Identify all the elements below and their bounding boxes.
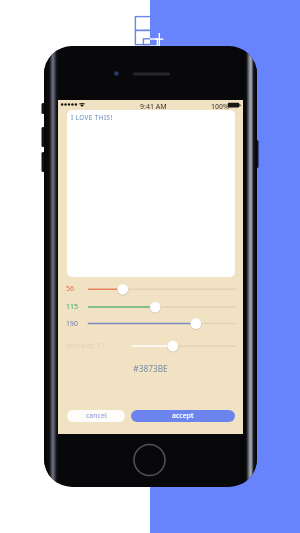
staticText: I LOVE THIS! — [71, 113, 113, 122]
staticText: 9:41 AM — [140, 102, 167, 112]
staticText: 56 — [66, 284, 75, 294]
staticText: 115 — [66, 302, 79, 312]
staticText: #3873BE — [58, 363, 243, 374]
button[interactable]: cancel — [67, 410, 125, 422]
staticText: cancel — [86, 411, 107, 421]
staticText: 190 — [66, 319, 79, 329]
staticText: accept — [172, 411, 194, 421]
staticText: font size: 17 — [66, 341, 106, 351]
staticText: 100% — [211, 102, 229, 112]
button[interactable]: accept — [131, 410, 235, 422]
